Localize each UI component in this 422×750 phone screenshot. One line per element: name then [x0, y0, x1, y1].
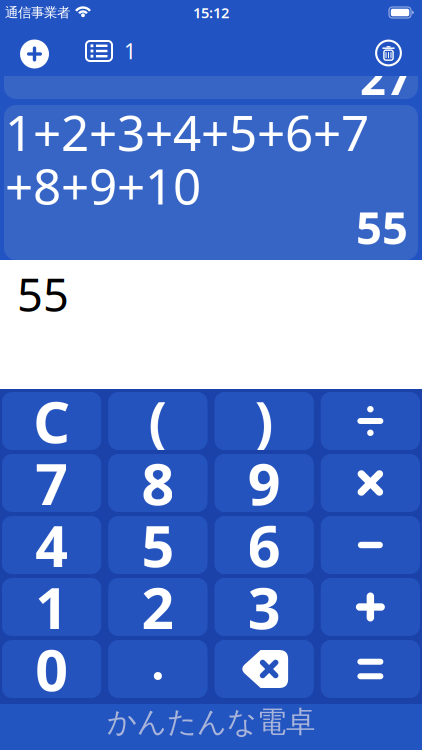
button[interactable]: = — [321, 640, 420, 698]
staticText: 55 — [17, 264, 69, 324]
staticText: 55 — [356, 197, 408, 257]
button[interactable]: 4 — [2, 516, 101, 574]
button[interactable]: ( — [108, 392, 207, 450]
button[interactable]: ) — [214, 392, 314, 450]
staticText: 1 — [124, 37, 136, 65]
staticText: 6 — [248, 507, 281, 583]
staticText: 7 — [35, 445, 68, 521]
staticText: 4 — [35, 507, 68, 583]
staticText: 通信事業者 — [5, 4, 70, 21]
staticText: 1 — [35, 569, 68, 645]
staticText: +8+9+10 — [5, 152, 201, 218]
button[interactable]: 7 — [2, 454, 101, 512]
button[interactable]: . — [108, 640, 207, 698]
button[interactable]: 9 — [214, 454, 314, 512]
button[interactable]: − — [321, 516, 420, 574]
button[interactable]: 6 — [214, 516, 314, 574]
button[interactable]: + — [321, 578, 420, 636]
staticText: 8 — [141, 445, 174, 521]
staticText: 0 — [35, 631, 68, 707]
button[interactable]: 8 — [108, 454, 207, 512]
button[interactable]: 3 — [214, 578, 314, 636]
button[interactable]: × — [321, 454, 420, 512]
staticText: C — [33, 383, 70, 459]
button[interactable]: Delete — [375, 39, 402, 66]
button[interactable]: History list — [86, 37, 136, 65]
staticText: かんたんな電卓 — [107, 704, 315, 740]
button[interactable]: かんたんな電卓 ad banner — [0, 704, 422, 750]
staticText: 5 — [141, 507, 174, 583]
button[interactable]: ÷ — [321, 392, 420, 450]
staticText: 15:12 — [193, 3, 229, 22]
staticText: 3 — [248, 569, 281, 645]
staticText: ) — [255, 385, 274, 457]
staticText: 2 — [141, 569, 174, 645]
staticText: 9 — [248, 445, 281, 521]
staticText: 27 — [360, 47, 412, 108]
button[interactable]: 0 — [2, 640, 101, 698]
staticText: ( — [148, 385, 167, 457]
staticText: 1+2+3+4+5+6+7 — [5, 99, 369, 164]
button[interactable]: 1 — [2, 578, 101, 636]
button[interactable]: 2 — [108, 578, 207, 636]
button[interactable]: Delete digit — [214, 640, 314, 698]
button[interactable]: 5 — [108, 516, 207, 574]
button[interactable]: New calculation — [20, 39, 49, 68]
button[interactable]: C — [2, 392, 101, 450]
